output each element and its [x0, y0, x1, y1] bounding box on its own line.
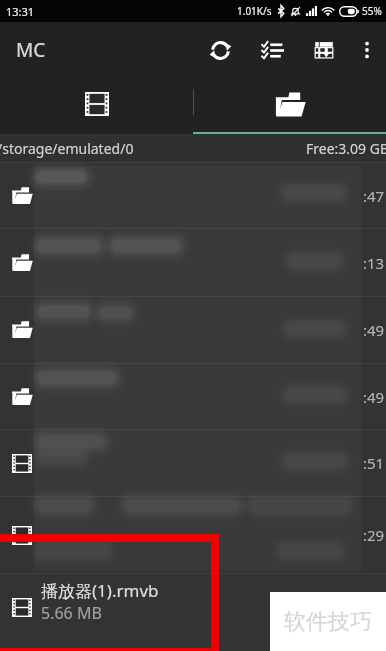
staticText: :49 [363, 387, 385, 407]
button[interactable]: More options [350, 22, 384, 78]
button[interactable]: :51 [0, 430, 386, 496]
staticText: :29 [363, 525, 385, 545]
staticText: :13 [363, 253, 385, 273]
staticText: 5.66 MB [41, 602, 102, 624]
staticText: 55% [362, 4, 382, 18]
button[interactable]: 播放器(1).rmvb [0, 574, 386, 640]
button[interactable]: :49 [0, 297, 386, 363]
button[interactable]: Folders tab [193, 78, 386, 134]
button[interactable]: Videos tab [0, 78, 193, 134]
button[interactable]: :47 [0, 163, 386, 228]
staticText: 播放器(1).rmvb [41, 579, 159, 602]
staticText: 1.01K/s [237, 4, 272, 18]
staticText: :51 [363, 453, 385, 473]
button[interactable]: :49 [0, 364, 386, 429]
button[interactable]: :29 [0, 497, 386, 573]
button[interactable]: Download [298, 22, 350, 78]
staticText: :49 [363, 320, 385, 340]
staticText: Free:3.09 GB [306, 139, 386, 158]
button[interactable]: :13 [0, 229, 386, 296]
staticText: 13:31 [6, 4, 35, 19]
staticText: :47 [363, 186, 385, 206]
button[interactable]: Multi select [246, 22, 298, 78]
staticText: MC [16, 37, 46, 63]
staticText: 软件技巧 [284, 608, 372, 636]
staticText: /storage/emulated/0 [0, 139, 134, 158]
button[interactable]: Refresh [194, 22, 246, 78]
